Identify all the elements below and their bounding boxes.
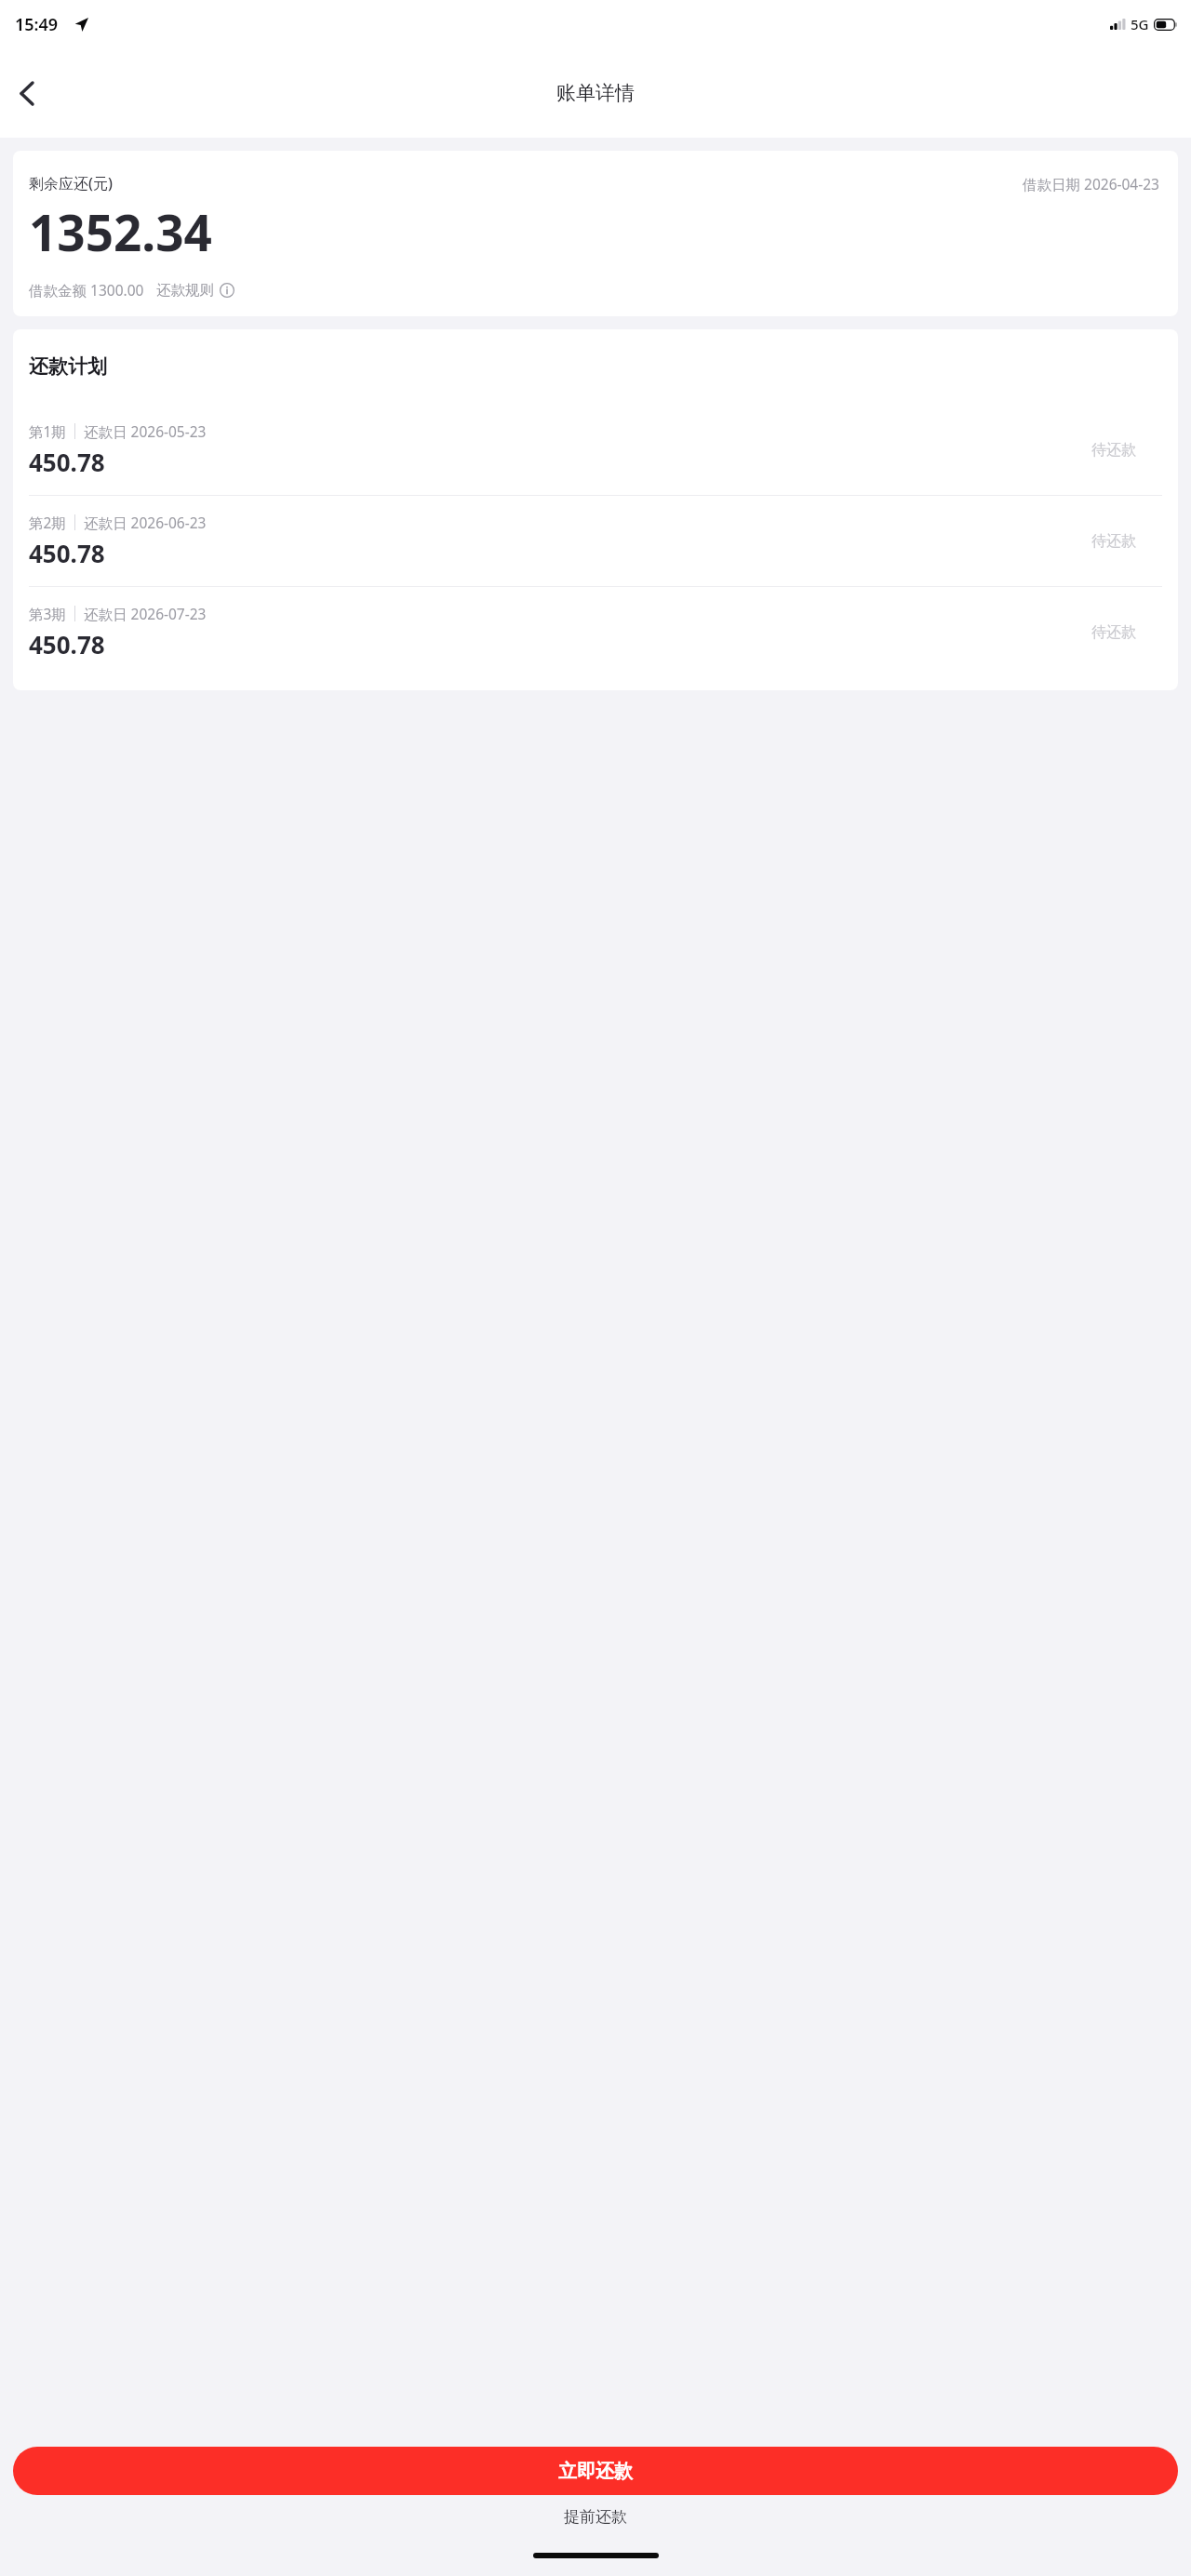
button[interactable]: 第3期 [29,587,1162,677]
staticText: 450.78 [29,537,105,569]
staticText: 第2期 [29,513,66,532]
staticText: 15:49 [15,13,59,36]
staticText: 借款金额 1300.00 [29,280,144,300]
staticText: 5G [1131,15,1149,33]
staticText: 还款日 2026-05-23 [84,421,207,441]
button[interactable]: 返回 [0,66,54,120]
staticText: 待还款 [1091,623,1136,642]
button[interactable]: 还款规则 [156,281,234,300]
staticText: 还款计划 [29,354,107,379]
staticText: 450.78 [29,628,105,661]
staticText: 第3期 [29,604,66,623]
staticText: 剩余应还(元) [29,173,113,194]
staticText: 第1期 [29,421,66,441]
button[interactable]: 立即还款 [13,2447,1178,2495]
button[interactable]: 第2期 [29,496,1162,586]
button[interactable]: 第1期 [29,405,1162,495]
staticText: 借款日期 2026-04-23 [1023,174,1159,194]
staticText: 待还款 [1091,441,1136,460]
button[interactable]: 提前还款 [540,2495,651,2539]
staticText: 还款规则 [156,281,214,300]
staticText: 待还款 [1091,532,1136,551]
staticText: 还款日 2026-06-23 [84,513,207,532]
staticText: 450.78 [29,446,105,478]
staticText: 立即还款 [558,2460,633,2483]
staticText: 提前还款 [564,2507,627,2527]
staticText: 账单详情 [556,81,635,105]
staticText: 还款日 2026-07-23 [84,604,207,623]
staticText: 1352.34 [29,198,212,265]
